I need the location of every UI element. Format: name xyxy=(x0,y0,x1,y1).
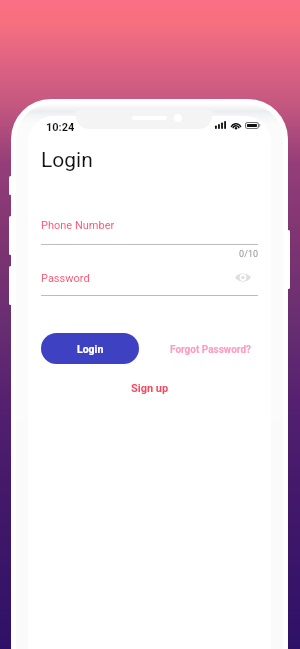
staticText: 0/10 xyxy=(41,249,258,260)
staticText: Phone Number xyxy=(41,219,115,232)
staticText: Forgot Password? xyxy=(170,344,252,356)
button[interactable]: Forgot Password? xyxy=(167,337,258,361)
staticText: Sign up xyxy=(131,382,169,395)
staticText: Password xyxy=(41,272,90,285)
button[interactable]: Show password xyxy=(230,265,255,290)
staticText: Login xyxy=(77,343,104,355)
button[interactable]: Sign up xyxy=(125,379,175,398)
button[interactable]: Login xyxy=(41,333,139,364)
staticText: 10:24 xyxy=(46,121,75,134)
staticText: Login xyxy=(41,148,93,173)
